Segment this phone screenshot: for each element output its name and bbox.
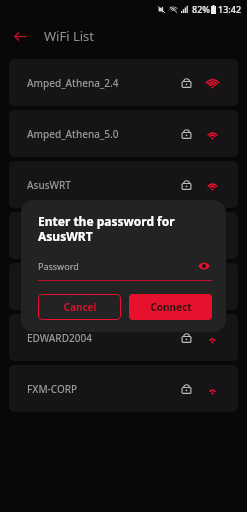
button[interactable]: Back — [10, 26, 30, 46]
staticText: Cancel — [63, 300, 97, 314]
button[interactable]: Show password — [196, 258, 212, 274]
button[interactable]: BespokeAV-Staff — [9, 263, 238, 310]
button[interactable]: Cancel — [38, 294, 121, 320]
staticText: WiFi List — [44, 27, 95, 45]
staticText: 82% — [192, 3, 210, 15]
staticText: Amped_Athena_2.4 — [27, 76, 119, 90]
staticText: BELL684 — [27, 229, 67, 243]
staticText: Password — [38, 260, 79, 272]
staticText: FXM-CORP — [27, 382, 78, 396]
staticText: BespokeAV-Staff — [27, 280, 106, 294]
staticText: AsusWRT — [27, 178, 71, 192]
button[interactable]: BELL684 — [9, 212, 238, 259]
staticText: Connect — [150, 300, 192, 314]
button[interactable]: Amped_Athena_2.4 — [9, 59, 238, 106]
staticText: EDWARD2004 — [27, 331, 92, 345]
button[interactable]: FXM-CORP — [9, 365, 238, 412]
staticText: Amped_Athena_5.0 — [27, 127, 119, 141]
button[interactable]: Connect — [129, 294, 212, 320]
button[interactable]: AsusWRT — [9, 161, 238, 208]
staticText: Enter the password for AsusWRT — [38, 213, 175, 244]
button[interactable]: EDWARD2004 — [9, 314, 238, 361]
staticText: 13:42 — [218, 3, 242, 15]
button[interactable]: Amped_Athena_5.0 — [9, 110, 238, 157]
